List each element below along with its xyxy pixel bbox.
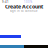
staticText: 100% [24, 0, 32, 4]
staticText: 9:41 [2, 0, 9, 4]
staticText: sign in to continue [10, 9, 38, 13]
staticText: Create Account [5, 3, 43, 10]
